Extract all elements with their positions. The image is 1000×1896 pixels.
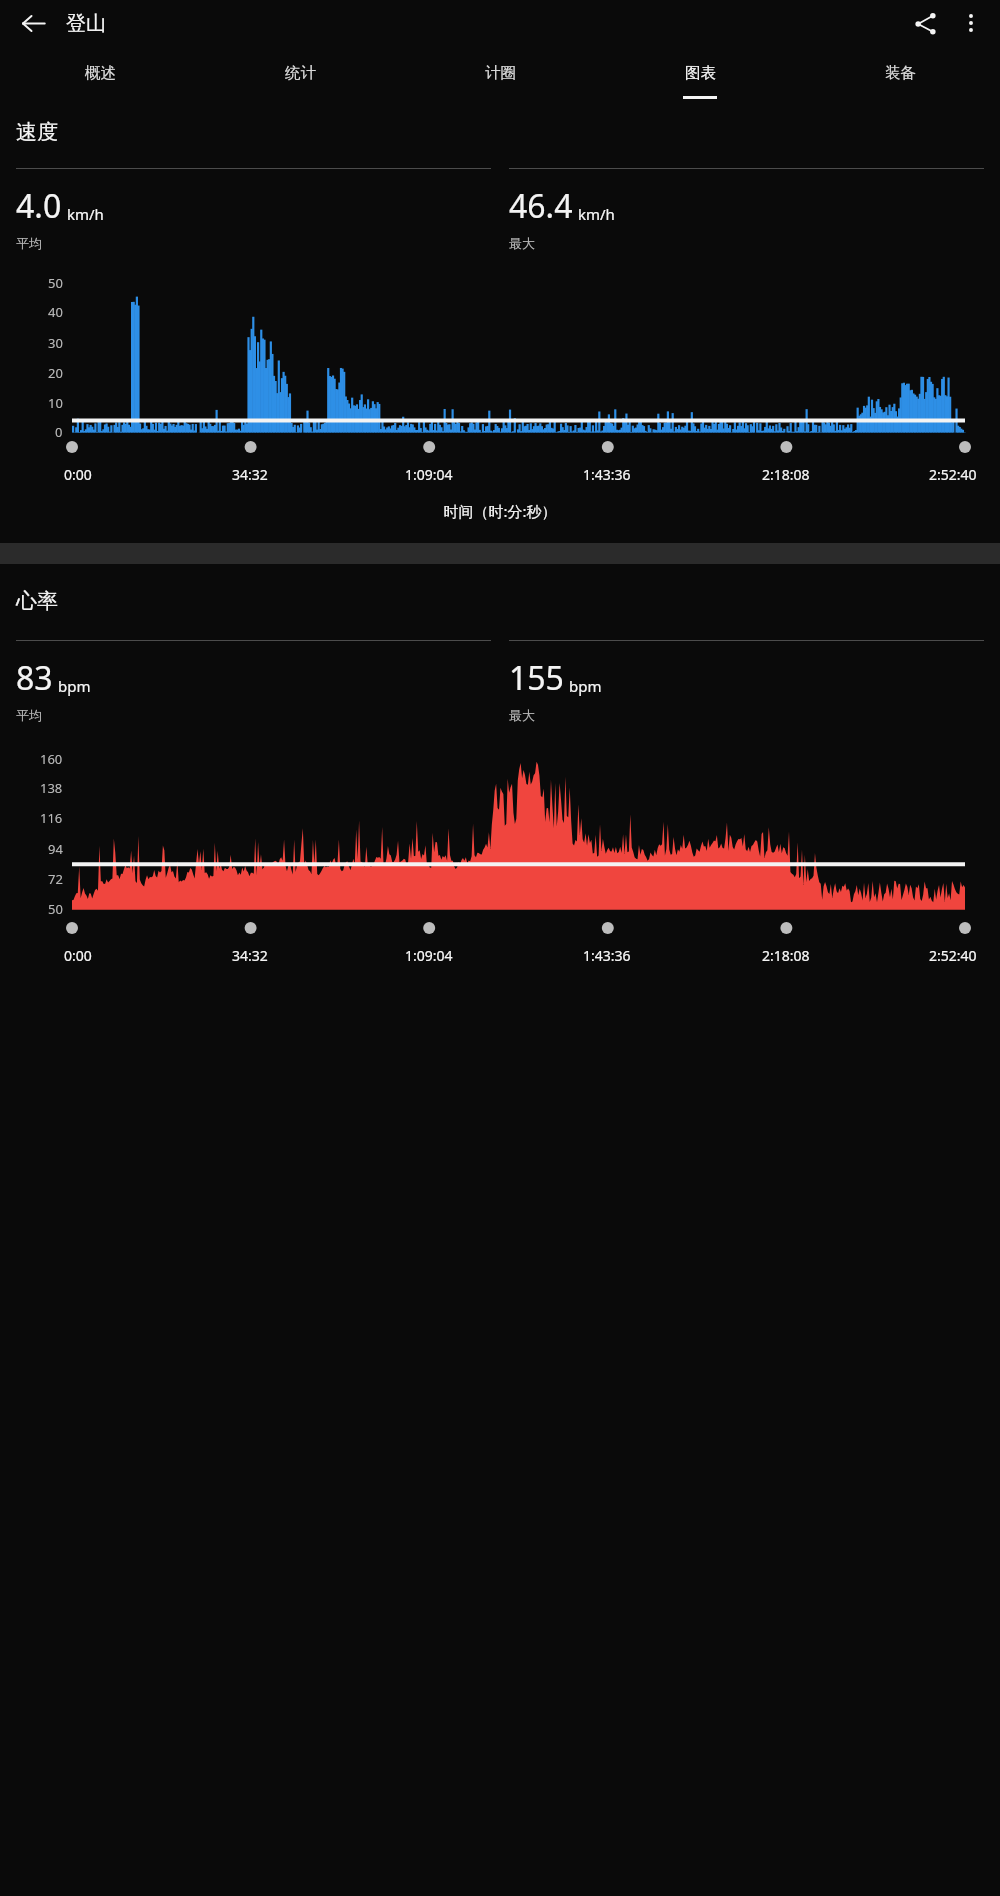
staticText: bpm xyxy=(569,676,602,696)
staticText: 0:00 xyxy=(64,946,92,965)
staticText: 4.0 xyxy=(16,184,62,228)
staticText: 72 xyxy=(48,870,63,888)
staticText: 概述 xyxy=(85,63,116,83)
staticText: 图表 xyxy=(685,63,716,83)
staticText: 速度 xyxy=(16,119,58,145)
staticText: 34:32 xyxy=(232,465,268,484)
staticText: 116 xyxy=(40,809,63,827)
staticText: 2:18:08 xyxy=(762,946,810,965)
staticText: 10 xyxy=(48,394,63,412)
staticText: 94 xyxy=(48,840,63,858)
staticText: 2:52:40 xyxy=(929,465,977,484)
staticText: 1:43:36 xyxy=(583,465,631,484)
button[interactable]: Share xyxy=(902,0,948,46)
staticText: 50 xyxy=(48,900,63,918)
button[interactable]: More options xyxy=(948,0,994,46)
staticText: 138 xyxy=(40,779,63,797)
button[interactable]: Back xyxy=(10,0,56,46)
staticText: 1:09:04 xyxy=(405,465,453,484)
staticText: 2:52:40 xyxy=(929,946,977,965)
staticText: 83 xyxy=(16,656,53,700)
staticText: 装备 xyxy=(885,63,916,83)
staticText: 160 xyxy=(40,750,63,768)
staticText: 计圈 xyxy=(485,63,516,83)
staticText: 平均 xyxy=(16,235,42,251)
staticText: 平均 xyxy=(16,707,42,723)
staticText: 0 xyxy=(55,423,63,441)
staticText: 2:18:08 xyxy=(762,465,810,484)
button[interactable]: 计圈 xyxy=(400,46,600,104)
staticText: bpm xyxy=(58,676,91,696)
staticText: 20 xyxy=(48,364,63,382)
staticText: 最大 xyxy=(509,707,535,723)
button[interactable]: 统计 xyxy=(200,46,400,104)
staticText: 30 xyxy=(48,334,63,352)
staticText: 40 xyxy=(48,303,63,321)
staticText: km/h xyxy=(67,204,104,224)
staticText: 0:00 xyxy=(64,465,92,484)
button[interactable]: 装备 xyxy=(800,46,1000,104)
staticText: 心率 xyxy=(16,588,58,614)
staticText: 登山 xyxy=(66,11,106,36)
staticText: 1:09:04 xyxy=(405,946,453,965)
staticText: 统计 xyxy=(285,63,316,83)
staticText: 155 xyxy=(509,656,564,700)
button[interactable]: 图表 xyxy=(600,46,800,104)
button[interactable]: 概述 xyxy=(0,46,200,104)
staticText: 34:32 xyxy=(232,946,268,965)
staticText: 1:43:36 xyxy=(583,946,631,965)
staticText: 时间（时:分:秒） xyxy=(0,501,1000,521)
staticText: km/h xyxy=(578,204,615,224)
staticText: 最大 xyxy=(509,235,535,251)
staticText: 46.4 xyxy=(509,184,573,228)
staticText: 50 xyxy=(48,274,63,292)
